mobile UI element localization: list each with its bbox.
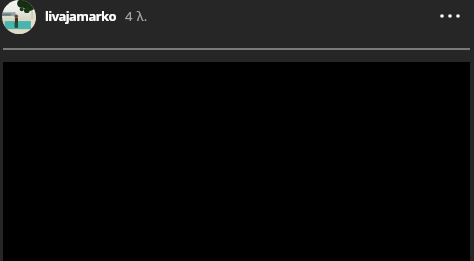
button[interactable]: More options (433, 0, 467, 33)
staticText: livajamarko (45, 7, 117, 25)
button[interactable]: Profile picture (2, 0, 36, 34)
staticText: 4 λ. (125, 7, 148, 25)
